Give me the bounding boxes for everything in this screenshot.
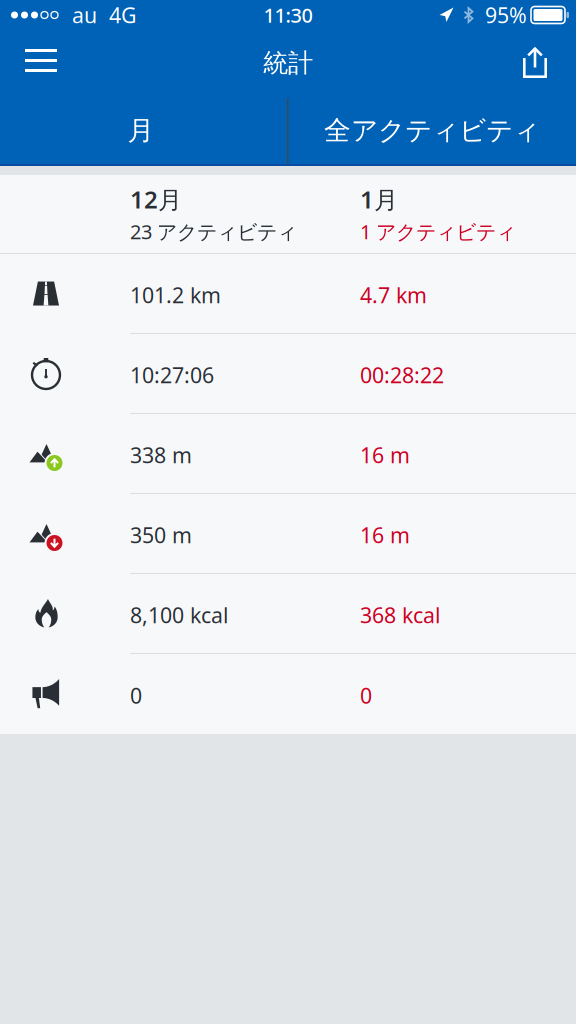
- staticText: 全アクティビティ: [324, 114, 540, 147]
- staticText: 0: [360, 681, 372, 710]
- staticText: 12月: [130, 183, 182, 215]
- staticText: 1月: [360, 183, 398, 215]
- staticText: 368 kcal: [360, 601, 441, 629]
- staticText: 0: [130, 681, 142, 710]
- staticText: 11:30: [263, 2, 312, 28]
- staticText: 統計: [263, 47, 313, 78]
- staticText: 8,100 kcal: [130, 601, 229, 629]
- staticText: 350 m: [130, 521, 192, 549]
- staticText: au: [72, 1, 97, 29]
- button[interactable]: Share: [486, 30, 576, 88]
- staticText: 4.7 km: [360, 281, 427, 309]
- staticText: 月: [127, 114, 154, 147]
- staticText: 4G: [109, 1, 137, 29]
- staticText: 10:27:06: [130, 361, 214, 389]
- staticText: 338 m: [130, 441, 192, 469]
- staticText: 16 m: [360, 441, 410, 469]
- staticText: 23 アクティビティ: [130, 218, 297, 245]
- staticText: 101.2 km: [130, 281, 221, 309]
- button[interactable]: Menu: [0, 30, 90, 88]
- staticText: 00:28:22: [360, 361, 444, 389]
- button[interactable]: 月: [0, 88, 288, 164]
- staticText: 1 アクティビティ: [360, 218, 516, 245]
- button[interactable]: 全アクティビティ: [288, 88, 576, 164]
- staticText: 95%: [485, 1, 527, 29]
- staticText: 16 m: [360, 521, 410, 549]
